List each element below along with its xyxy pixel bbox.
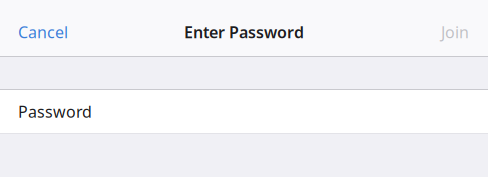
staticText: Enter Password xyxy=(184,21,304,43)
staticText: Join xyxy=(441,21,469,43)
staticText: Cancel xyxy=(18,21,68,43)
button[interactable]: Password xyxy=(0,89,488,134)
staticText: Password xyxy=(18,101,92,122)
button[interactable]: Join xyxy=(431,13,469,51)
button[interactable]: Cancel xyxy=(18,13,78,51)
